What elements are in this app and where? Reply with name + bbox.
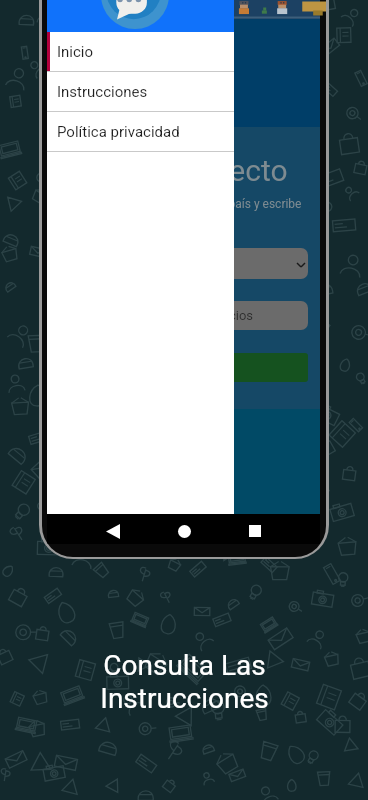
button[interactable]: Instrucciones (47, 72, 234, 112)
button[interactable]: Recent apps (237, 516, 273, 546)
button[interactable]: Selecciona tu país (60, 248, 308, 279)
button[interactable]: Back (95, 516, 131, 546)
button[interactable]: Política privacidad (47, 112, 234, 152)
staticText: Política privacidad (57, 123, 180, 141)
staticText: Selecciona el código de tu país y escrib… (86, 197, 302, 211)
button[interactable]: Escribe el numero sin espacios (60, 301, 308, 330)
staticText: Instrucciones (57, 83, 148, 101)
staticText: Consulta Las (103, 649, 266, 682)
staticText: Escribe el numero sin espacios (74, 308, 254, 323)
staticText: WhatsApp Directo (47, 153, 288, 188)
button[interactable]: Inicio (47, 32, 234, 72)
button[interactable] (60, 353, 308, 382)
staticText: Inicio (57, 43, 94, 61)
staticText: Instrucciones (100, 682, 269, 715)
button[interactable]: Home (166, 516, 202, 546)
